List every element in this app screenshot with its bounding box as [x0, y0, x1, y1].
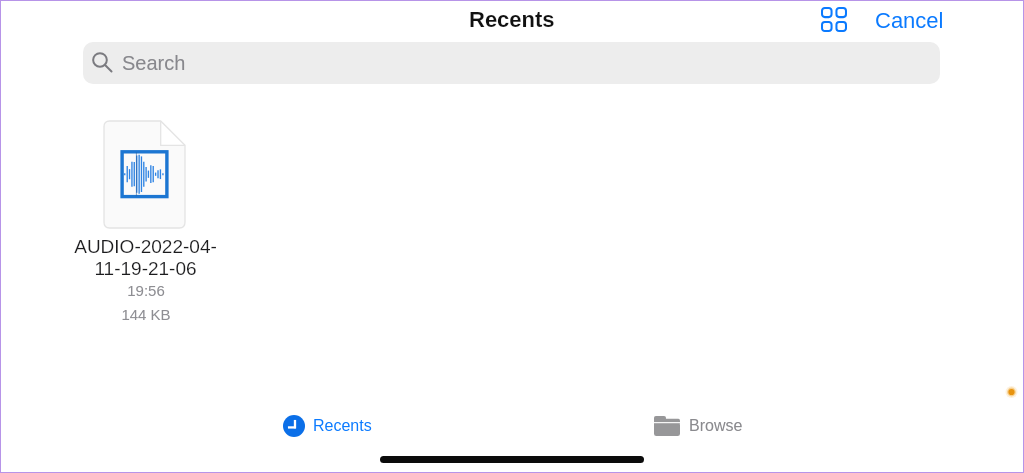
button[interactable]: AUDIO-2022-04- [58, 114, 233, 326]
button[interactable]: Browse [512, 404, 1024, 448]
button[interactable]: Grid view [812, 3, 856, 35]
staticText: Recents [469, 7, 555, 32]
staticText: Browse [689, 417, 743, 435]
staticText: 144 KB [121, 306, 171, 323]
button[interactable]: Recents [0, 404, 512, 448]
button[interactable]: Search [83, 42, 940, 84]
staticText: 19:56 [127, 282, 165, 299]
staticText: Recents [313, 417, 372, 435]
staticText: AUDIO-2022-04- [74, 236, 217, 257]
staticText: 11-19-21-06 [94, 258, 197, 279]
staticText: Search [122, 52, 186, 74]
button[interactable]: Cancel [864, 0, 955, 38]
staticText: Cancel [875, 8, 944, 33]
